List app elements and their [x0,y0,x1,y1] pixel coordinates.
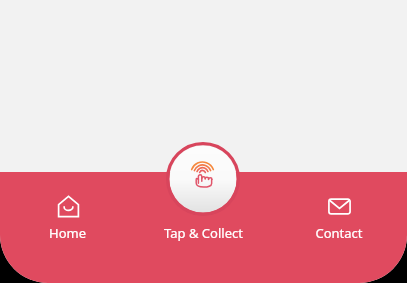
staticText: Contact [315,224,363,242]
button[interactable]: Contact [271,172,407,283]
button[interactable]: Home [0,172,135,283]
other: Home [57,195,80,218]
staticText: Tap & Collect [164,224,243,242]
button[interactable]: Tap & Collect [135,172,271,283]
button[interactable]: Tap and Collect [166,142,240,216]
staticText: Home [49,224,86,242]
other: Contact [328,195,351,218]
